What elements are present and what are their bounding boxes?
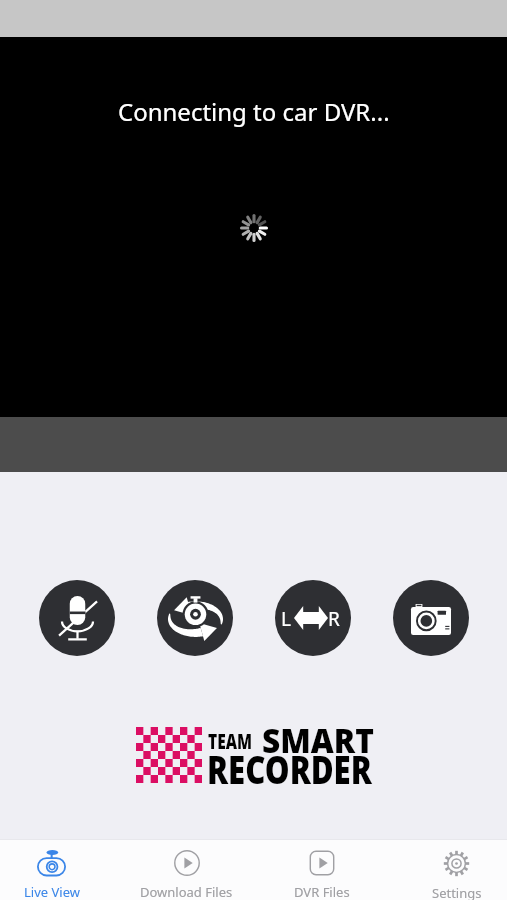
staticText: Download Files [140,883,233,900]
staticText: R [328,606,340,630]
staticText: TEAM [208,727,252,756]
button[interactable]: Download Files [119,840,254,900]
staticText: SMART [262,717,374,763]
staticText: L [281,606,291,630]
button[interactable]: Settings [389,840,507,900]
staticText: RECORDER [207,743,372,795]
button[interactable]: DVR Files [254,840,389,900]
button[interactable]: Swap left and right camera [275,580,351,656]
staticText: Live View [24,883,80,900]
button[interactable]: Live View [0,840,119,900]
button[interactable]: Take photo [393,580,469,656]
button[interactable]: Mute microphone [39,580,115,656]
button[interactable]: Switch camera view [157,580,233,656]
staticText: DVR Files [294,883,350,900]
staticText: Connecting to car DVR... [118,95,390,128]
staticText: Settings [432,884,482,900]
